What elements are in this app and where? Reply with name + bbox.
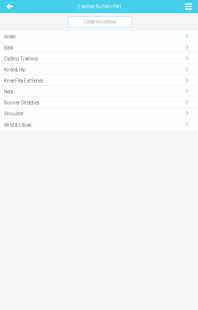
button[interactable]: Knee & Hip: [0, 64, 198, 75]
staticText: Shoulder: [4, 111, 24, 116]
staticText: Exercises By Body Part: [77, 4, 120, 9]
button[interactable]: Runner Stretches: [0, 97, 198, 108]
staticText: Cycling Training: [4, 56, 38, 61]
staticText: Wrist & Elbow: [4, 122, 31, 128]
button[interactable]: Back: [0, 42, 198, 53]
staticText: Runner Stretches: [4, 100, 39, 105]
button[interactable]: Create An Exercise: [68, 17, 132, 27]
staticText: Back: [4, 45, 13, 50]
staticText: Neck: [4, 89, 13, 94]
staticText: Create An Exercise: [84, 19, 116, 25]
button[interactable]: Wrist & Elbow: [0, 119, 198, 130]
staticText: Knee Flex Ext Series: [4, 78, 43, 83]
staticText: Ankle: [4, 34, 15, 39]
button[interactable]: Knee Flex Ext Series: [0, 75, 198, 86]
button[interactable]: Ankle: [0, 31, 198, 42]
button[interactable]: Shoulder: [0, 108, 198, 119]
button[interactable]: Back: [0, 0, 19, 13]
button[interactable]: Menu: [179, 0, 198, 13]
button[interactable]: Cycling Training: [0, 53, 198, 64]
button[interactable]: Neck: [0, 86, 198, 97]
staticText: Knee & Hip: [4, 67, 26, 72]
